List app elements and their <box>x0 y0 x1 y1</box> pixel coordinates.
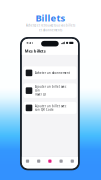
button[interactable]: Profil <box>67 157 78 165</box>
staticText: Mes billets <box>25 48 46 53</box>
staticText: Ajouter un billet avec son QR Code <box>35 104 66 111</box>
staticText: Ajouter un billet avec son <box>35 85 66 92</box>
button[interactable]: Ajouter un billet avec son QR Code <box>23 102 76 114</box>
staticText: et abonnements <box>39 28 62 32</box>
staticText: Achetez et retrouvez tous vos billets <box>26 24 75 27</box>
button[interactable]: Accueil <box>22 157 33 165</box>
button[interactable]: Ajouter un billet avec son <box>23 83 76 98</box>
staticText: Billets <box>35 12 65 24</box>
button[interactable]: Acheter un abonnement <box>23 66 76 79</box>
staticText: Travel ID <box>35 93 46 96</box>
staticText: 9:41 <box>26 41 33 45</box>
button[interactable]: Recherche <box>33 157 44 165</box>
staticText: Acheter un abonnement <box>35 71 70 75</box>
button[interactable]: Trajets <box>55 157 67 165</box>
button[interactable]: Billets <box>44 157 55 165</box>
